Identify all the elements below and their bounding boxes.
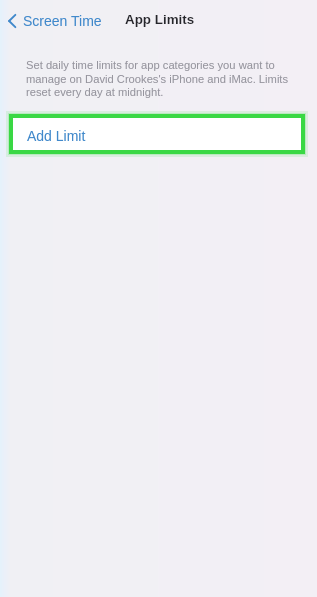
staticText: App Limits	[125, 12, 195, 27]
staticText: Set daily time limits for app categories…	[26, 59, 294, 98]
staticText: Screen Time	[23, 13, 102, 29]
button[interactable]: Back to Screen Time	[6, 10, 104, 32]
button[interactable]: Add Limit	[9, 114, 305, 154]
staticText: Add Limit	[27, 128, 86, 144]
